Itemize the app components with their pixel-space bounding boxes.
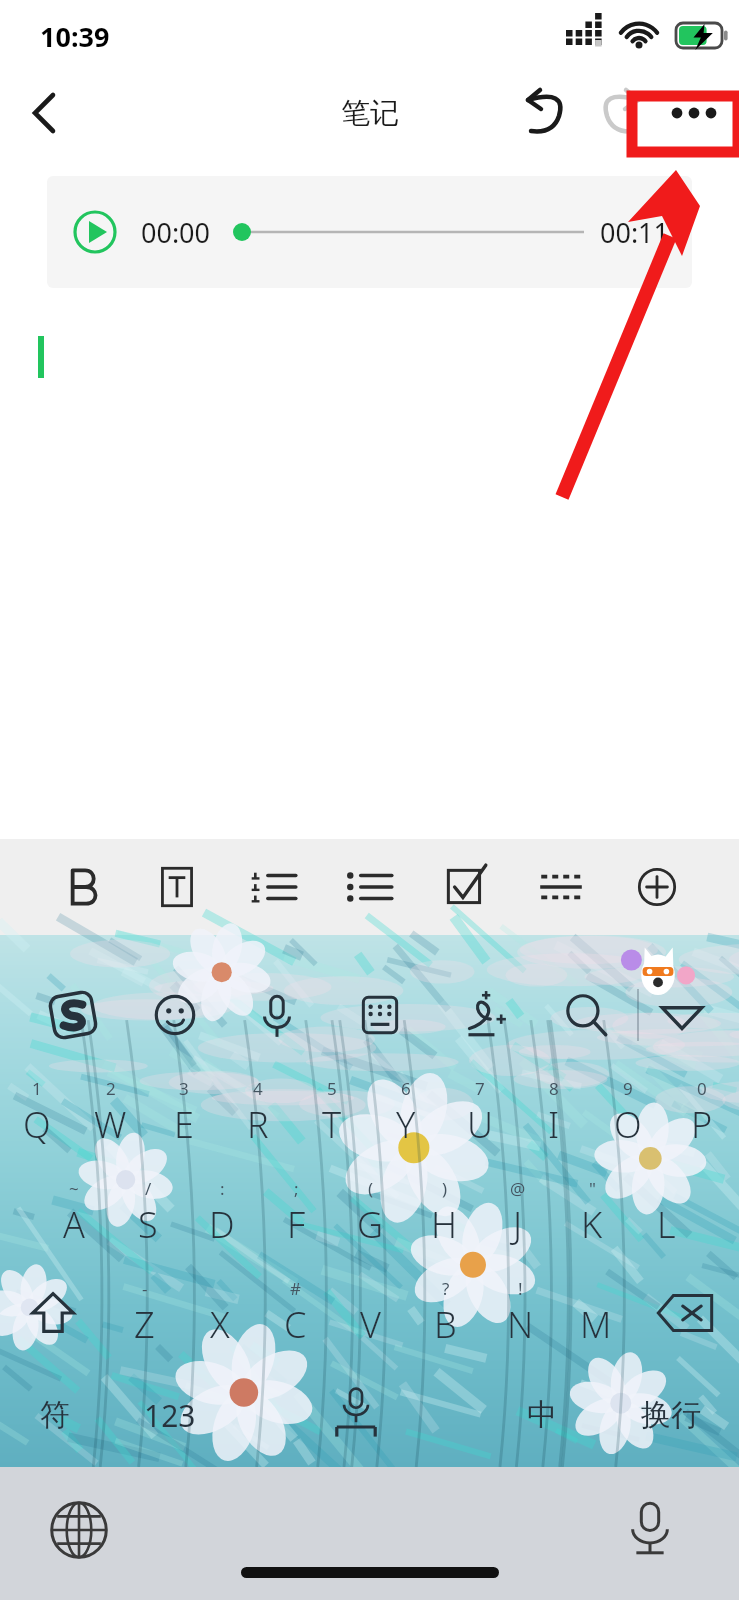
button[interactable]: Hide keyboard bbox=[639, 935, 725, 1063]
button[interactable]: Emoji bbox=[124, 935, 226, 1063]
button[interactable]: ( bbox=[333, 1163, 407, 1263]
button[interactable]: Space and voice bbox=[230, 1363, 482, 1467]
button[interactable]: Numbered list bbox=[225, 839, 321, 935]
staticText: 10:39 bbox=[40, 18, 110, 55]
staticText: E bbox=[174, 1100, 194, 1149]
button[interactable]: 中 bbox=[482, 1363, 602, 1467]
button[interactable]: Handwriting bbox=[431, 935, 534, 1063]
staticText: X bbox=[210, 1300, 230, 1349]
button[interactable]: 0 bbox=[665, 1063, 739, 1163]
staticText: R bbox=[247, 1100, 269, 1149]
staticText: " bbox=[589, 1177, 596, 1200]
button[interactable]: Dictation bbox=[619, 1497, 681, 1559]
button[interactable]: 1 bbox=[0, 1063, 73, 1163]
button[interactable]: Shift bbox=[16, 1276, 90, 1350]
button[interactable]: Bold bbox=[34, 839, 129, 935]
button[interactable]: Search bbox=[534, 935, 637, 1063]
button[interactable]: Sogou bbox=[22, 935, 124, 1063]
staticText: S bbox=[138, 1200, 158, 1249]
staticText: 换行 bbox=[641, 1396, 701, 1434]
staticText: O bbox=[614, 1100, 642, 1149]
staticText: I bbox=[548, 1100, 560, 1149]
button[interactable]: 4 bbox=[221, 1063, 295, 1163]
button[interactable]: ? bbox=[408, 1263, 483, 1363]
staticText: 中 bbox=[527, 1396, 557, 1434]
button[interactable]: 7 bbox=[443, 1063, 517, 1163]
staticText: ~ bbox=[69, 1177, 79, 1200]
button[interactable]: Undo bbox=[515, 83, 575, 143]
staticText: M bbox=[580, 1300, 612, 1349]
staticText: P bbox=[691, 1100, 713, 1149]
button[interactable]: 3 bbox=[147, 1063, 221, 1163]
staticText: - bbox=[142, 1277, 148, 1300]
staticText: ) bbox=[442, 1177, 448, 1200]
button[interactable]: More options bbox=[661, 80, 727, 146]
button[interactable]: Back bbox=[16, 85, 72, 141]
button[interactable]: @ bbox=[481, 1163, 555, 1263]
staticText: G bbox=[357, 1200, 384, 1249]
staticText: : bbox=[220, 1177, 225, 1200]
staticText: 2 bbox=[106, 1077, 116, 1100]
button[interactable]: : bbox=[185, 1163, 259, 1263]
staticText: V bbox=[360, 1300, 381, 1349]
button[interactable]: ) bbox=[407, 1163, 481, 1263]
button[interactable]: 123 bbox=[110, 1363, 230, 1467]
button[interactable]: Voice input bbox=[226, 935, 328, 1063]
button[interactable]: 符 bbox=[0, 1363, 110, 1467]
staticText: 123 bbox=[144, 1395, 196, 1436]
staticText: 笔记 bbox=[341, 95, 399, 132]
staticText: A bbox=[63, 1200, 85, 1249]
button[interactable]: Play bbox=[73, 210, 117, 254]
staticText: L bbox=[657, 1200, 676, 1249]
button[interactable]: Redo bbox=[591, 83, 651, 143]
button[interactable]: " bbox=[555, 1163, 629, 1263]
button[interactable]: Bulleted list bbox=[321, 839, 417, 935]
button[interactable]: ; bbox=[259, 1163, 333, 1263]
staticText: 4 bbox=[253, 1077, 263, 1100]
button[interactable]: Change language bbox=[48, 1499, 110, 1561]
staticText: 1 bbox=[32, 1077, 42, 1100]
button[interactable]: - bbox=[106, 1263, 182, 1363]
button[interactable]: L bbox=[629, 1163, 703, 1263]
button[interactable]: Text style bbox=[129, 839, 225, 935]
button[interactable]: Checklist bbox=[417, 839, 513, 935]
button[interactable]: V bbox=[333, 1263, 408, 1363]
staticText: F bbox=[287, 1200, 306, 1249]
staticText: # bbox=[290, 1277, 301, 1300]
button[interactable]: / bbox=[111, 1163, 185, 1263]
staticText: 符 bbox=[40, 1396, 70, 1434]
staticText: W bbox=[94, 1100, 127, 1149]
button[interactable]: ~ bbox=[36, 1163, 111, 1263]
button[interactable]: Keyboard layout bbox=[328, 935, 431, 1063]
staticText: 6 bbox=[401, 1077, 411, 1100]
button[interactable]: Backspace bbox=[645, 1273, 725, 1353]
staticText: 00:00 bbox=[141, 214, 211, 251]
button[interactable]: ! bbox=[483, 1263, 558, 1363]
staticText: Z bbox=[134, 1300, 155, 1349]
staticText: 8 bbox=[549, 1077, 559, 1100]
button[interactable]: M bbox=[558, 1263, 633, 1363]
staticText: ? bbox=[442, 1277, 450, 1300]
button[interactable]: 6 bbox=[369, 1063, 443, 1163]
staticText: 7 bbox=[475, 1077, 485, 1100]
staticText: J bbox=[513, 1200, 523, 1249]
staticText: D bbox=[209, 1200, 235, 1249]
button[interactable]: 5 bbox=[295, 1063, 369, 1163]
staticText: B bbox=[434, 1300, 457, 1349]
staticText: / bbox=[145, 1177, 152, 1200]
button[interactable]: Divider bbox=[513, 839, 609, 935]
staticText: 3 bbox=[179, 1077, 189, 1100]
staticText: 00:11 bbox=[600, 214, 670, 251]
button[interactable]: 8 bbox=[517, 1063, 591, 1163]
button[interactable]: X bbox=[182, 1263, 258, 1363]
button[interactable]: 2 bbox=[73, 1063, 147, 1163]
button[interactable]: 换行 bbox=[602, 1363, 739, 1467]
staticText: 5 bbox=[327, 1077, 337, 1100]
button[interactable]: Play bbox=[47, 176, 692, 288]
button[interactable]: # bbox=[258, 1263, 333, 1363]
staticText: T bbox=[322, 1100, 342, 1149]
button[interactable]: 9 bbox=[591, 1063, 665, 1163]
button[interactable]: Insert bbox=[609, 839, 705, 935]
staticText: 0 bbox=[697, 1077, 707, 1100]
staticText: H bbox=[431, 1200, 458, 1249]
